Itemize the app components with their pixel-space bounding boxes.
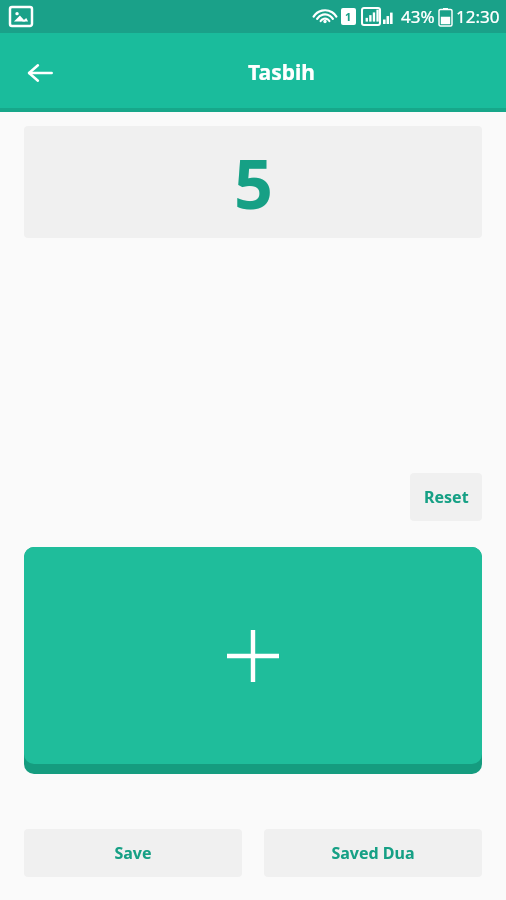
button[interactable]: 5 bbox=[24, 126, 482, 238]
staticText: Save bbox=[114, 842, 152, 864]
button[interactable]: Reset bbox=[410, 473, 482, 521]
button[interactable]: Saved Dua bbox=[264, 829, 482, 877]
staticText: Reset bbox=[424, 486, 469, 508]
staticText: 1 bbox=[345, 9, 352, 24]
staticText: 5 bbox=[234, 136, 273, 229]
button[interactable]: Save bbox=[24, 829, 242, 877]
button[interactable]: Back bbox=[14, 47, 66, 99]
button[interactable]: Increment counter bbox=[24, 547, 482, 774]
staticText: 43% bbox=[401, 5, 435, 28]
staticText: Tasbih bbox=[248, 58, 315, 87]
staticText: Saved Dua bbox=[331, 842, 415, 864]
staticText: 12:30 bbox=[456, 5, 500, 28]
